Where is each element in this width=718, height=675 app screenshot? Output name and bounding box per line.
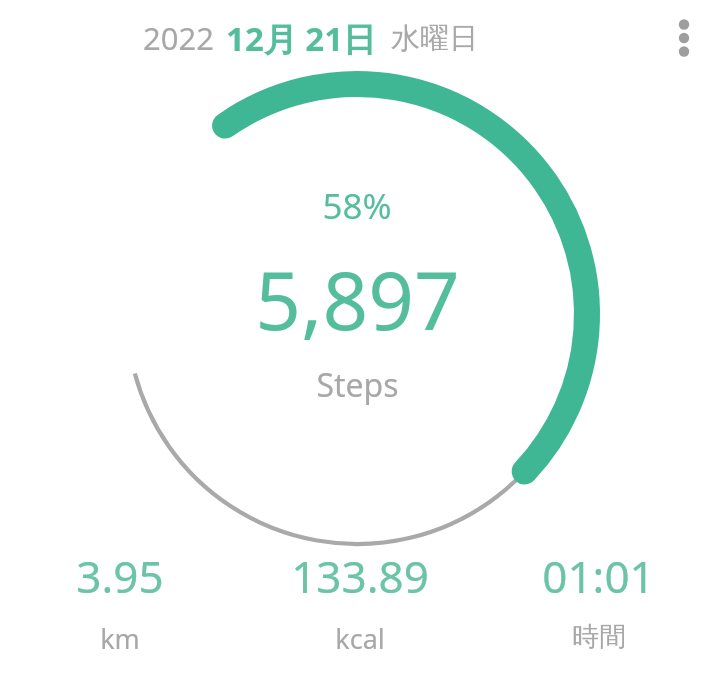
staticText: kcal <box>335 620 385 657</box>
staticText: 12月 21日 <box>226 16 377 61</box>
staticText: 水曜日 <box>391 20 478 57</box>
button[interactable]: More options <box>656 10 712 66</box>
button[interactable]: 3.95 <box>0 542 240 661</box>
button[interactable]: 01:01 <box>479 542 718 658</box>
staticText: 5,897 <box>255 244 460 353</box>
staticText: 時間 <box>572 620 626 654</box>
staticText: 2022 <box>143 17 214 59</box>
staticText: 3.95 <box>76 546 164 606</box>
staticText: km <box>100 620 140 657</box>
staticText: 133.89 <box>291 546 429 606</box>
button[interactable]: 133.89 <box>240 542 479 661</box>
staticText: 01:01 <box>542 546 655 606</box>
staticText: 58% <box>322 182 392 230</box>
staticText: Steps <box>316 363 399 407</box>
